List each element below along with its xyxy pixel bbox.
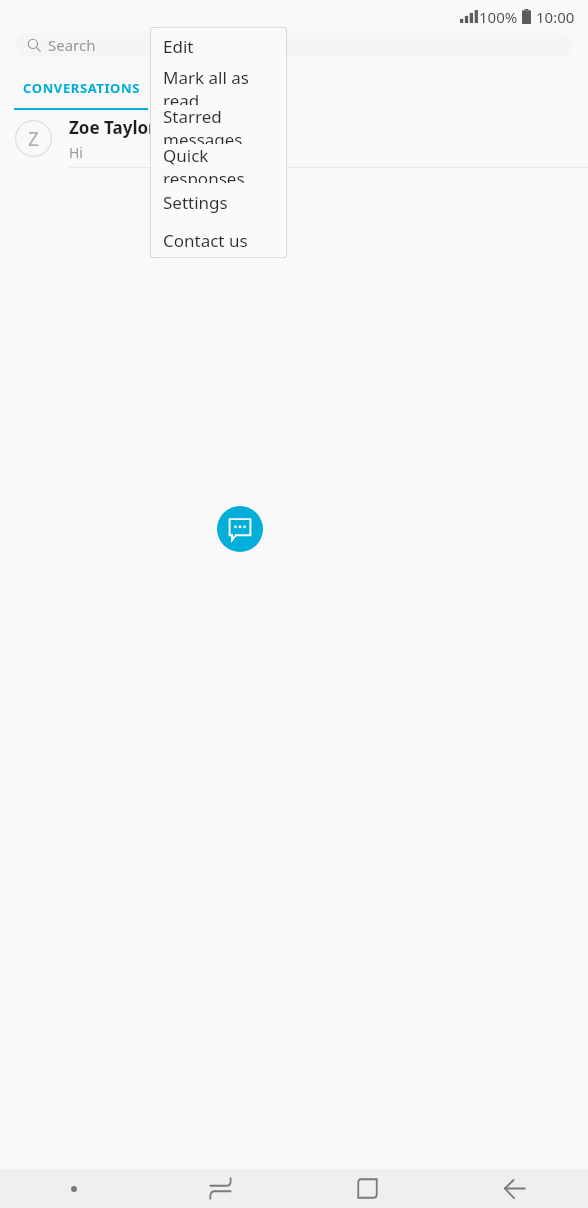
button[interactable]: Settings (150, 183, 287, 222)
button[interactable]: Z (0, 110, 588, 167)
staticText: Contact us (163, 229, 248, 252)
staticText: Mark all as read (163, 66, 287, 105)
staticText: Zoe Taylor (69, 116, 156, 139)
button[interactable]: Multi window (147, 1169, 294, 1208)
button[interactable]: Mark all as read (150, 66, 287, 105)
button[interactable]: Starred messages (150, 105, 287, 144)
staticText: Z (28, 126, 39, 152)
button[interactable]: CONVERSATIONS (14, 79, 148, 110)
staticText: Search (48, 35, 96, 55)
staticText: Edit (163, 35, 194, 58)
button[interactable]: Edit (150, 27, 287, 66)
staticText: Settings (163, 191, 228, 214)
staticText: Hi (69, 143, 83, 162)
staticText: Quick responses (163, 144, 287, 183)
button[interactable]: Recents (294, 1169, 441, 1208)
button[interactable]: More options (0, 1169, 147, 1208)
staticText: 10:00 (536, 7, 575, 27)
staticText: 100% (479, 7, 518, 27)
button[interactable]: Search (15, 33, 573, 57)
button[interactable]: Contact us (150, 222, 287, 258)
staticText: Starred messages (163, 105, 287, 144)
button[interactable]: New conversation (217, 506, 263, 552)
staticText: CONVERSATIONS (23, 79, 140, 97)
button[interactable]: Back (441, 1169, 588, 1208)
button[interactable]: Quick responses (150, 144, 287, 183)
